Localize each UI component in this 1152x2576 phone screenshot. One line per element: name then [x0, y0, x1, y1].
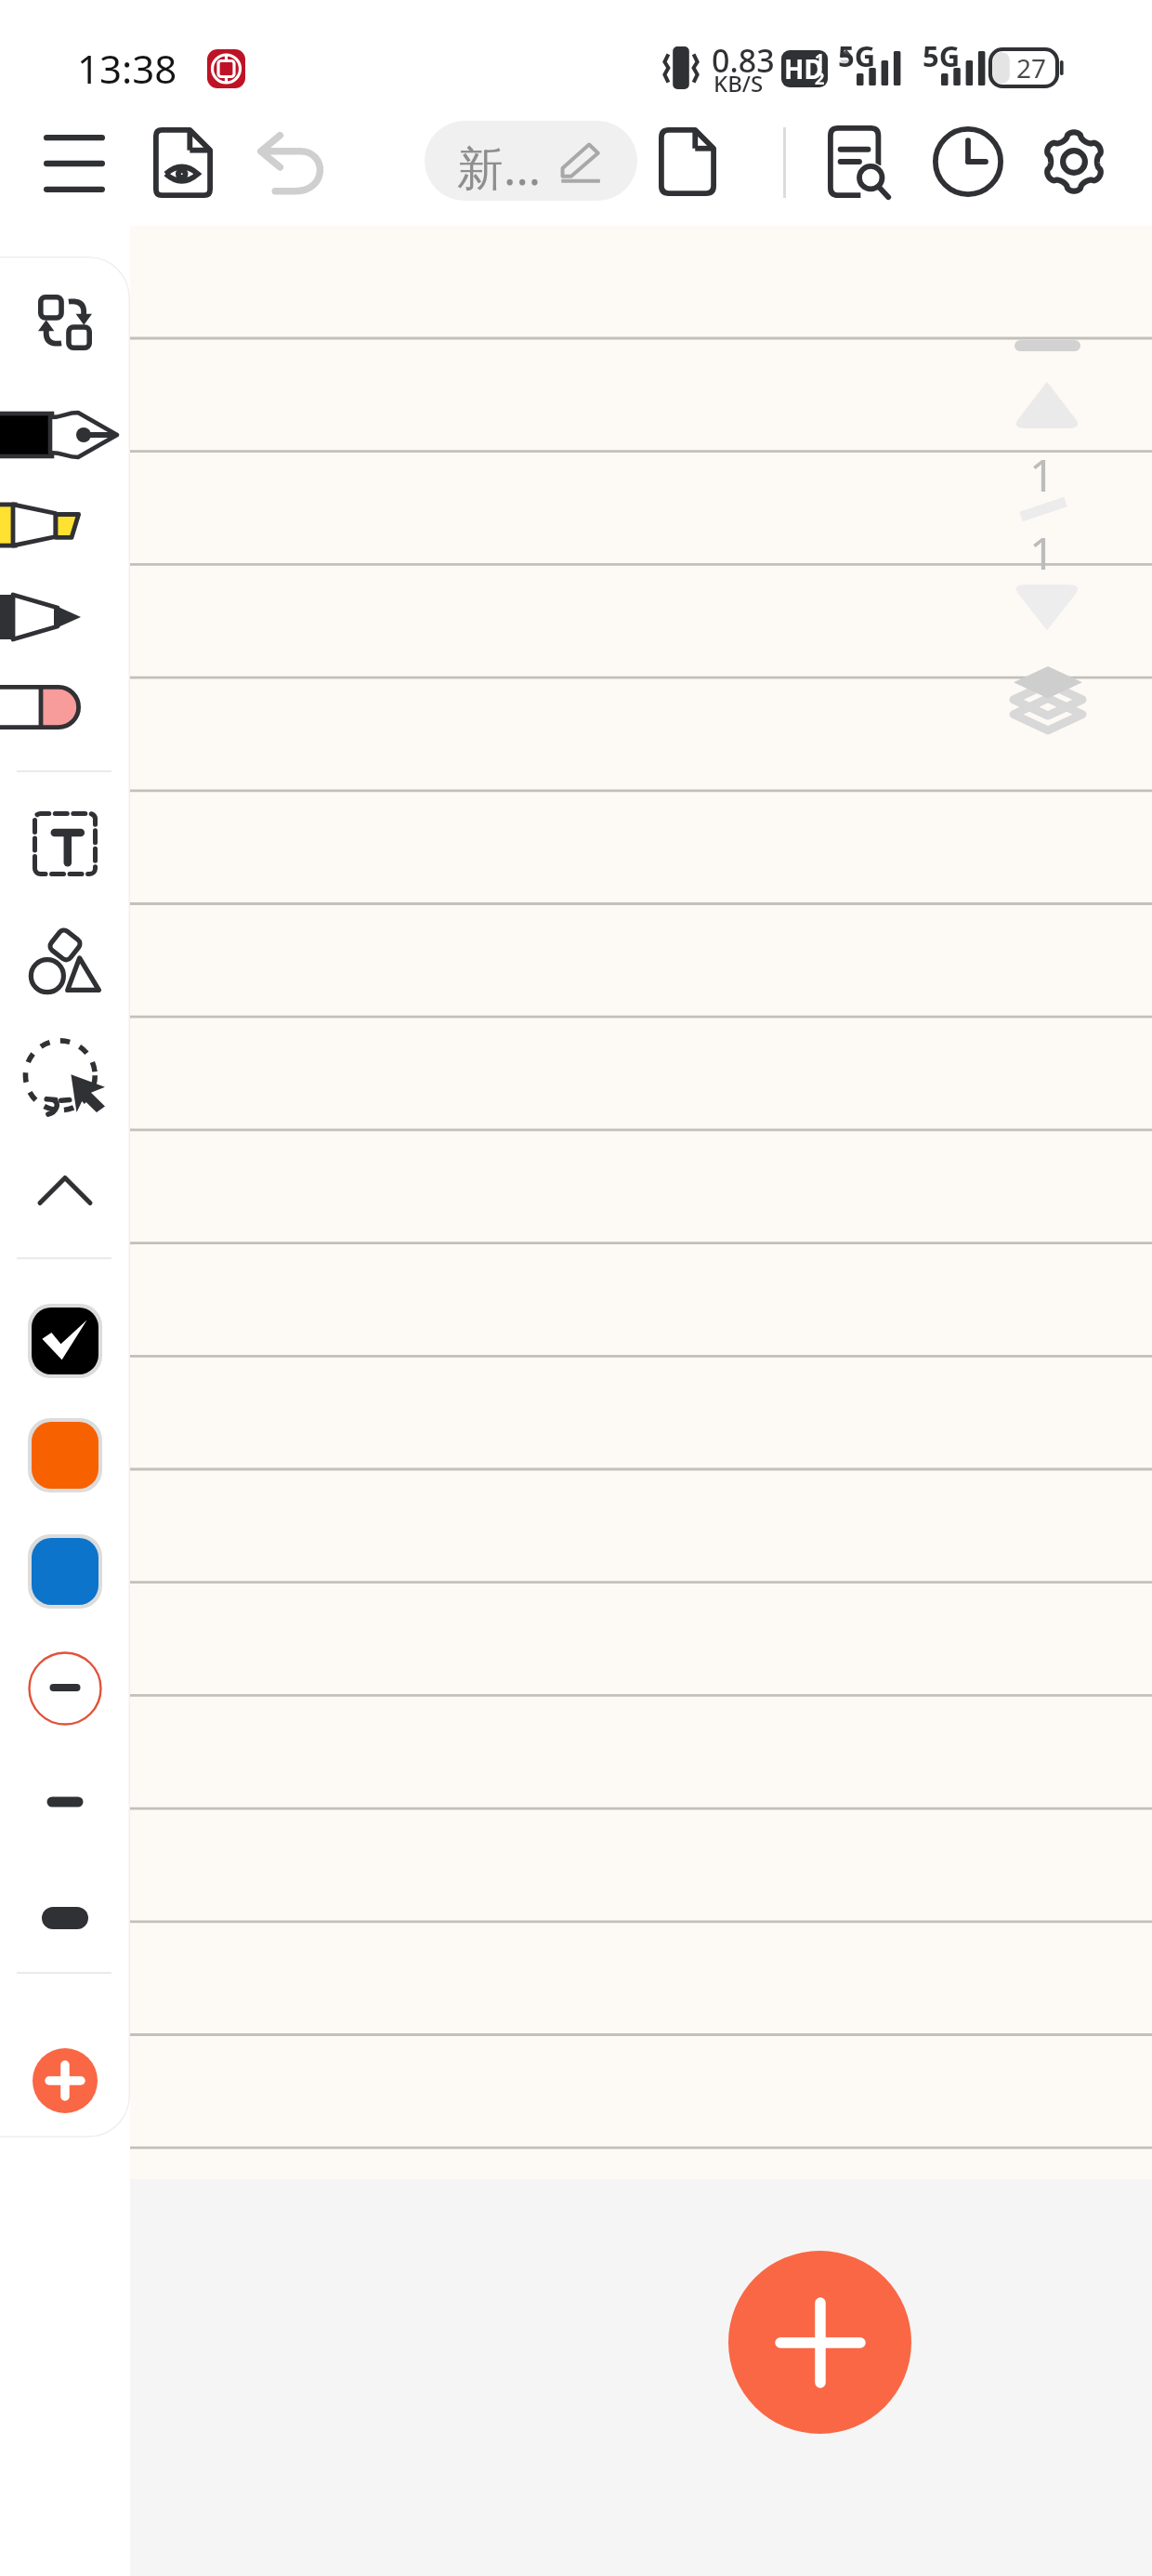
button[interactable]: Settings: [1031, 119, 1117, 204]
button[interactable]: Search notes: [817, 119, 902, 204]
button[interactable]: Color: [0, 1405, 130, 1505]
button[interactable]: Undo: [249, 121, 334, 206]
button[interactable]: Pen: [0, 383, 130, 487]
button[interactable]: Layers: [1012, 664, 1084, 730]
staticText: KB/S: [713, 68, 764, 99]
button[interactable]: Page handle: [1015, 340, 1080, 351]
button[interactable]: Rotate page: [0, 270, 130, 375]
staticText: 新...: [457, 136, 542, 199]
button[interactable]: Lasso select: [0, 1028, 130, 1132]
button[interactable]: Preview: [140, 120, 226, 205]
button[interactable]: Highlighter: [0, 473, 130, 577]
staticText: 0.83: [712, 39, 775, 82]
button[interactable]: Rename note: [425, 121, 637, 201]
button[interactable]: New page: [645, 119, 730, 204]
staticText: 2: [815, 67, 825, 87]
staticText: HD: [784, 51, 823, 86]
staticText: 1: [1029, 444, 1055, 505]
staticText: 1: [1029, 522, 1055, 583]
button[interactable]: Shapes: [0, 908, 130, 1012]
button[interactable]: Add color: [33, 2048, 98, 2113]
button[interactable]: Previous page: [1013, 380, 1081, 428]
staticText: 13:38: [77, 42, 177, 95]
button[interactable]: Marker: [0, 565, 130, 669]
button[interactable]: Color: [0, 1291, 130, 1391]
button[interactable]: Eraser: [0, 655, 130, 759]
staticText: 1: [815, 50, 825, 72]
button[interactable]: Stroke width: [0, 1868, 130, 1968]
button[interactable]: Menu: [32, 121, 117, 206]
button[interactable]: Next page: [1013, 585, 1081, 632]
button[interactable]: Stroke width: [0, 1638, 130, 1739]
staticText: 27: [1016, 50, 1047, 85]
button[interactable]: Stroke width: [0, 1752, 130, 1852]
button[interactable]: Text box: [0, 792, 130, 896]
button[interactable]: Collapse: [0, 1138, 130, 1242]
button[interactable]: Color: [0, 1521, 130, 1622]
staticText: 5G: [838, 36, 876, 75]
staticText: 5G: [923, 36, 961, 75]
button[interactable]: History: [925, 119, 1011, 204]
button[interactable]: Add page: [728, 2251, 911, 2434]
